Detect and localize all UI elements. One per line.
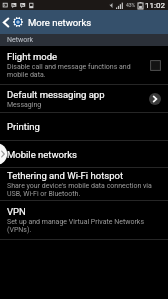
button[interactable]: Tethering and Wi-Fi hotspot xyxy=(0,168,168,200)
button[interactable]: Flight mode xyxy=(0,46,168,84)
button[interactable]: Navigate up xyxy=(0,10,12,34)
staticText: Network xyxy=(7,36,34,44)
staticText: Share your device's mobile data connecti… xyxy=(7,182,152,198)
staticText: Mobile networks xyxy=(7,149,77,160)
staticText: Set up and manage Virtual Private Networ… xyxy=(7,218,145,234)
button[interactable]: Open default messaging app xyxy=(149,93,161,105)
staticText: Printing xyxy=(7,121,40,132)
button[interactable]: Printing xyxy=(0,113,168,140)
button[interactable]: Default messaging app xyxy=(0,85,168,112)
staticText: Messaging xyxy=(7,101,42,109)
staticText: Tethering and Wi-Fi hotspot xyxy=(7,170,124,181)
button[interactable]: VPN xyxy=(0,201,168,239)
staticText: 43% xyxy=(126,2,136,8)
button[interactable]: Mobile networks xyxy=(0,141,168,167)
staticText: Flight mode xyxy=(7,51,58,62)
staticText: Disable call and message functions and m… xyxy=(7,63,131,79)
staticText: Default messaging app xyxy=(7,89,105,100)
button[interactable]: Flight mode checkbox xyxy=(150,60,161,71)
staticText: VPN xyxy=(7,206,26,217)
staticText: More networks xyxy=(28,17,92,28)
staticText: 11:02 xyxy=(145,1,165,10)
